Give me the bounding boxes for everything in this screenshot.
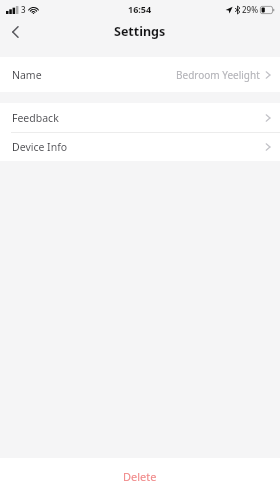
button[interactable]: Name (0, 57, 280, 92)
staticText: 16:54 (128, 3, 152, 15)
staticText: Name (12, 68, 42, 82)
staticText: 29% (242, 4, 258, 15)
button[interactable]: Delete (0, 458, 280, 495)
staticText: 3 (21, 4, 26, 15)
button[interactable]: Back (0, 18, 30, 45)
staticText: Device Info (12, 140, 68, 154)
staticText: Feedback (12, 111, 59, 125)
staticText: Settings (114, 23, 166, 40)
button[interactable]: Device Info (0, 133, 280, 161)
staticText: Bedroom Yeelight (176, 68, 260, 82)
button[interactable]: Feedback (0, 103, 280, 132)
staticText: Delete (123, 469, 157, 484)
